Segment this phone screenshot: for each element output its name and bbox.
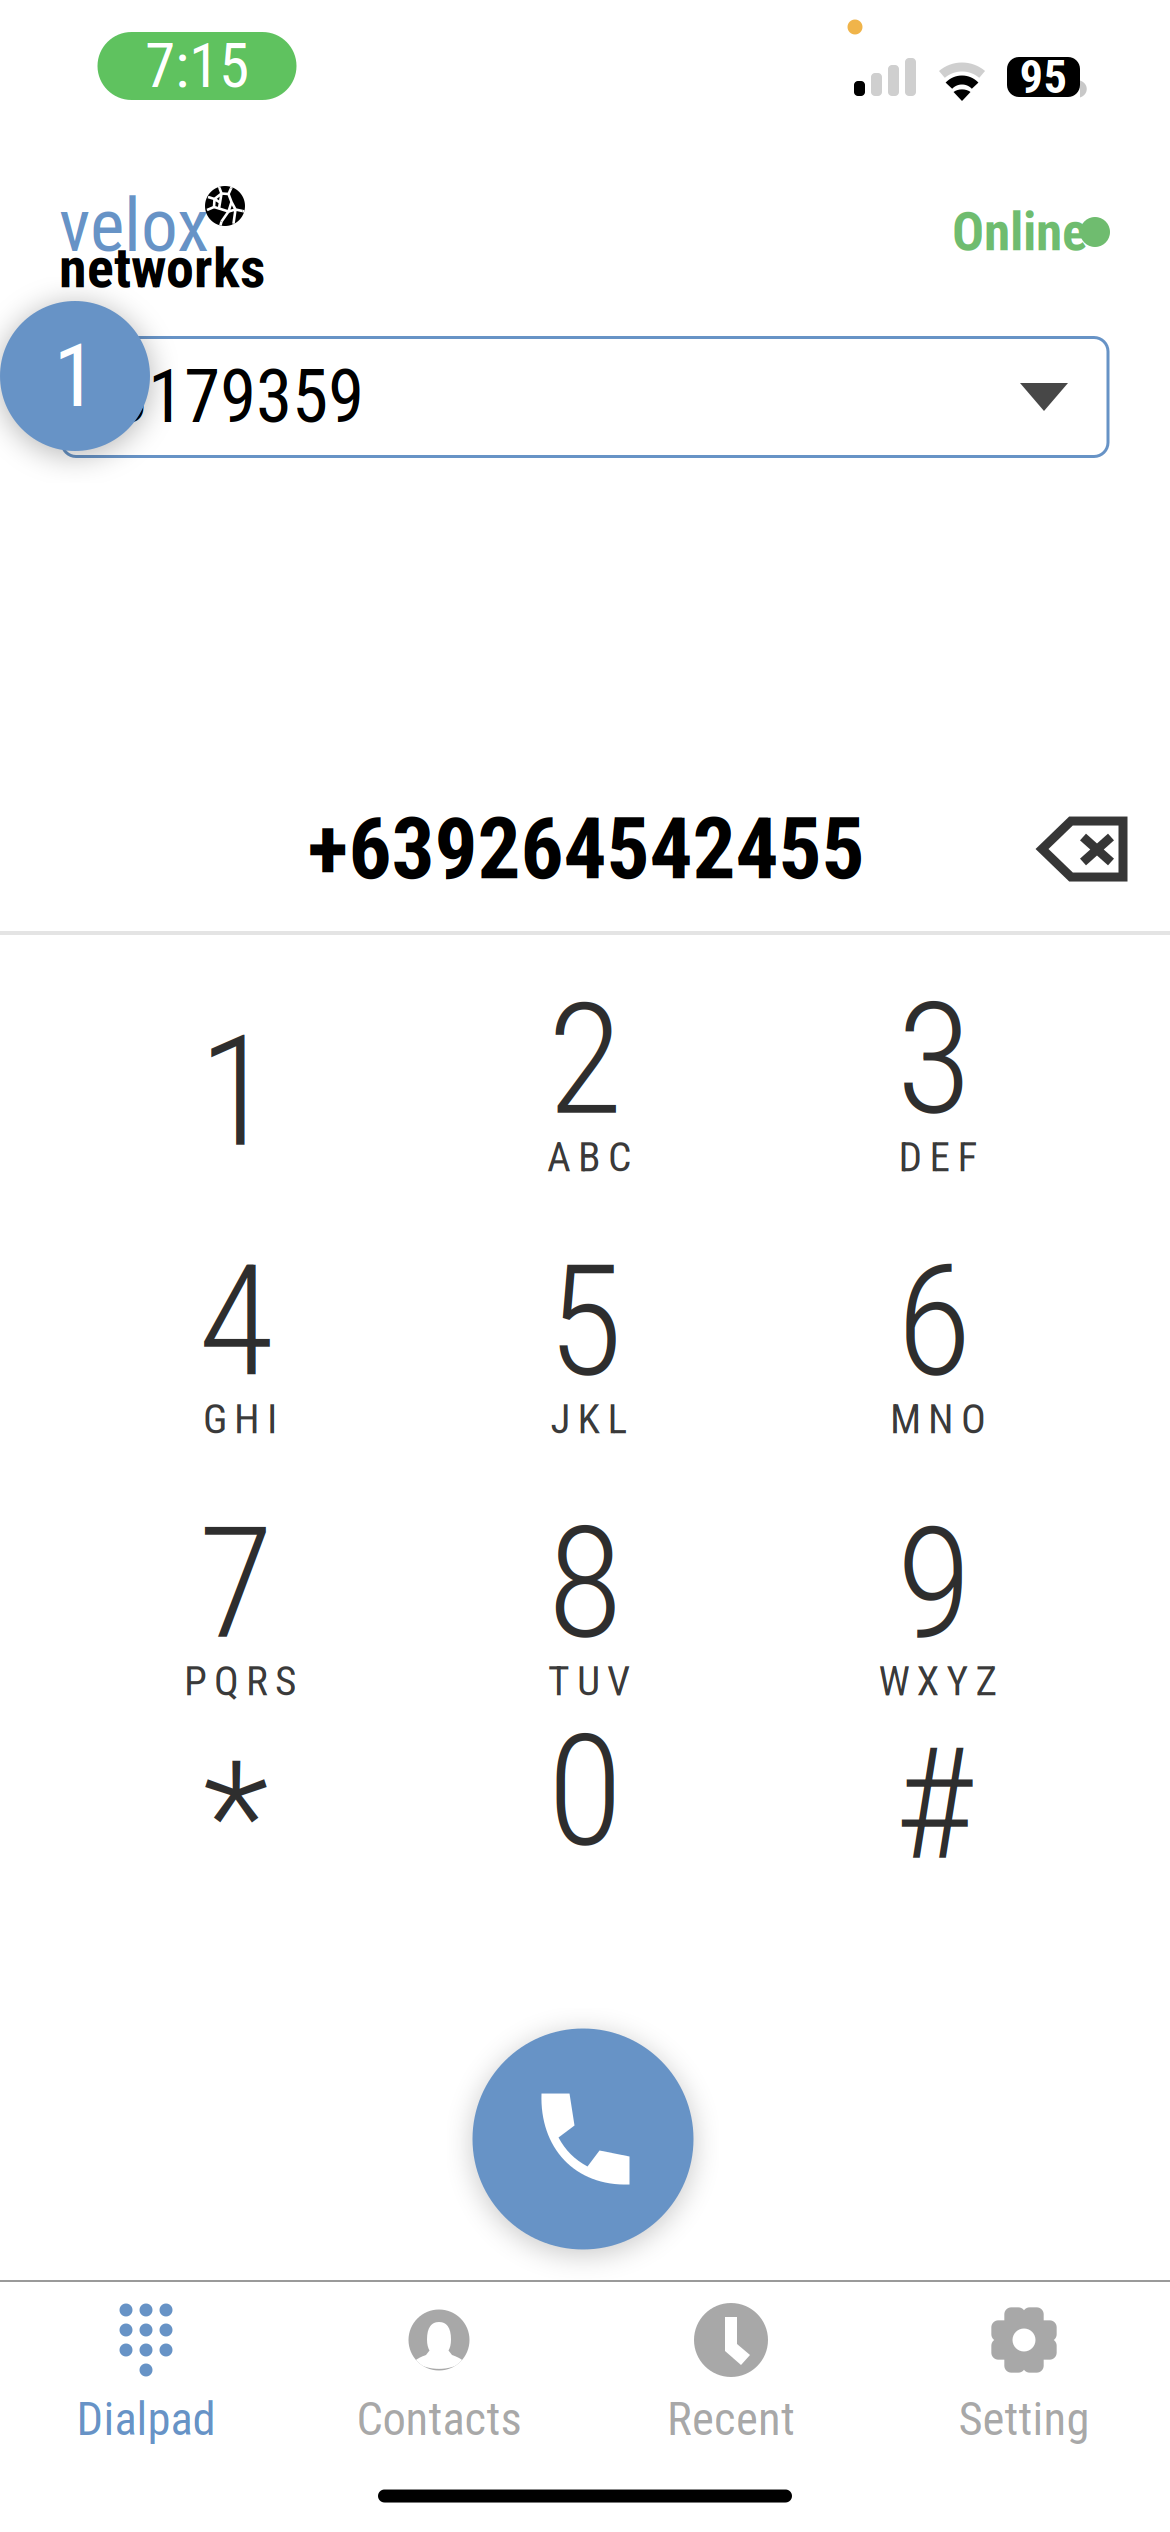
staticText: 9 — [896, 1493, 971, 1675]
staticText: 8 — [547, 1493, 622, 1675]
button[interactable]: 9 — [764, 1501, 1104, 1731]
staticText: GHI — [203, 1395, 277, 1443]
button[interactable]: 0 — [415, 1677, 755, 1907]
button[interactable]: 4 — [66, 1239, 406, 1469]
staticText: 4 — [198, 1231, 273, 1413]
staticText: 7 — [198, 1493, 273, 1675]
button[interactable]: Setting — [878, 2300, 1170, 2456]
staticText: DEF — [898, 1133, 977, 1181]
button[interactable]: 6 — [764, 1239, 1104, 1469]
staticText: 1 — [198, 1001, 273, 1183]
staticText: MNO — [890, 1395, 986, 1443]
button[interactable]: 8 — [415, 1501, 755, 1731]
staticText: 95 — [1019, 50, 1067, 104]
staticText: * — [203, 1727, 269, 1909]
staticText: 1 — [53, 324, 96, 427]
staticText: JKL — [550, 1395, 627, 1443]
staticText: PQRS — [184, 1657, 296, 1705]
button[interactable]: * — [66, 1703, 406, 1933]
button[interactable]: Recent — [585, 2300, 877, 2456]
staticText: 2 — [547, 969, 622, 1151]
button[interactable]: 7 — [66, 1501, 406, 1731]
button[interactable]: Dialpad — [0, 2300, 292, 2456]
staticText: 5 — [547, 1231, 622, 1413]
button[interactable]: Call — [472, 2028, 693, 2249]
staticText: 3 — [896, 969, 971, 1151]
staticText: ABC — [547, 1133, 631, 1181]
button[interactable]: Online — [952, 196, 1110, 266]
staticText: +639264542455 — [307, 799, 864, 899]
staticText: # — [894, 1714, 973, 1896]
button[interactable]: 1 — [66, 977, 406, 1207]
staticText: Contacts — [356, 2392, 521, 2446]
staticText: Online — [952, 201, 1088, 263]
button[interactable]: 5 — [415, 1239, 755, 1469]
staticText: networks — [59, 235, 265, 301]
button[interactable]: 1 extension — [0, 301, 150, 451]
staticText: 6 — [896, 1231, 971, 1413]
staticText: TUV — [548, 1657, 630, 1705]
staticText: WXYZ — [878, 1657, 997, 1705]
button[interactable]: 3 — [764, 977, 1104, 1207]
button[interactable]: 2 — [415, 977, 755, 1207]
button[interactable]: # — [764, 1690, 1104, 1920]
staticText: 3179359 — [112, 354, 364, 440]
staticText: velox — [59, 183, 209, 269]
staticText: 0 — [547, 1701, 622, 1883]
button[interactable]: Delete — [1008, 794, 1158, 904]
staticText: 7:15 — [145, 30, 249, 102]
staticText: Dialpad — [76, 2392, 215, 2446]
staticText: Recent — [667, 2392, 795, 2446]
button[interactable]: 3179359 — [62, 337, 1108, 456]
staticText: Setting — [958, 2392, 1089, 2446]
button[interactable]: Contacts — [293, 2300, 585, 2456]
